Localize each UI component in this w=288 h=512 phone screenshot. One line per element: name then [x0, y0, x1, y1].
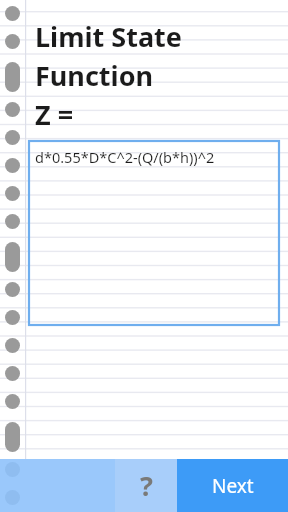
- staticText: d*0.55*D*C^2-(Q/(b*h))^2: [35, 147, 215, 167]
- staticText: Function: [35, 57, 154, 94]
- staticText: Limit State: [35, 18, 182, 55]
- button[interactable]: Help: [115, 459, 177, 512]
- staticText: Next: [212, 473, 254, 499]
- button[interactable]: Next: [177, 459, 288, 512]
- button[interactable]: d*0.55*D*C^2-(Q/(b*h))^2: [29, 141, 279, 325]
- staticText: ?: [140, 467, 153, 504]
- staticText: Z =: [35, 96, 74, 133]
